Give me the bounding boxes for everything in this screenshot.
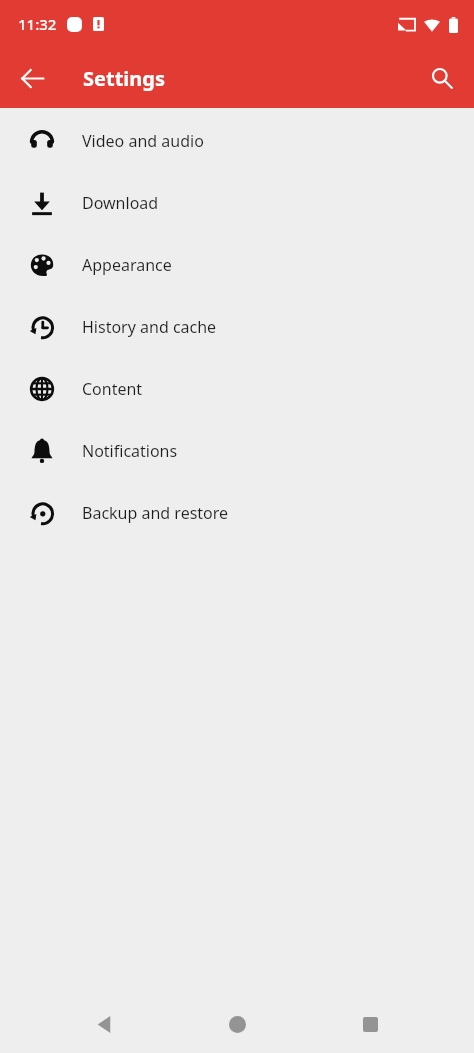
staticText: History and cache bbox=[82, 316, 217, 338]
staticText: Appearance bbox=[82, 254, 172, 276]
staticText: Download bbox=[82, 192, 159, 214]
button[interactable]: Search bbox=[418, 54, 466, 102]
button[interactable]: Back bbox=[77, 996, 133, 1052]
button[interactable]: Recent apps bbox=[342, 996, 398, 1052]
button[interactable]: Backup and restore bbox=[0, 482, 474, 544]
button[interactable]: Home bbox=[209, 996, 265, 1052]
staticText: Backup and restore bbox=[82, 502, 229, 524]
button[interactable]: Video and audio bbox=[0, 110, 474, 172]
staticText: Video and audio bbox=[82, 130, 204, 152]
button[interactable]: History and cache bbox=[0, 296, 474, 358]
button[interactable]: Content bbox=[0, 358, 474, 420]
button[interactable]: Back bbox=[8, 54, 56, 102]
button[interactable]: Notifications bbox=[0, 420, 474, 482]
button[interactable]: Appearance bbox=[0, 234, 474, 296]
button[interactable]: Download bbox=[0, 172, 474, 234]
staticText: Notifications bbox=[82, 440, 178, 462]
staticText: Content bbox=[82, 378, 143, 400]
staticText: Settings bbox=[83, 65, 165, 92]
staticText: 11:32 bbox=[18, 14, 57, 34]
